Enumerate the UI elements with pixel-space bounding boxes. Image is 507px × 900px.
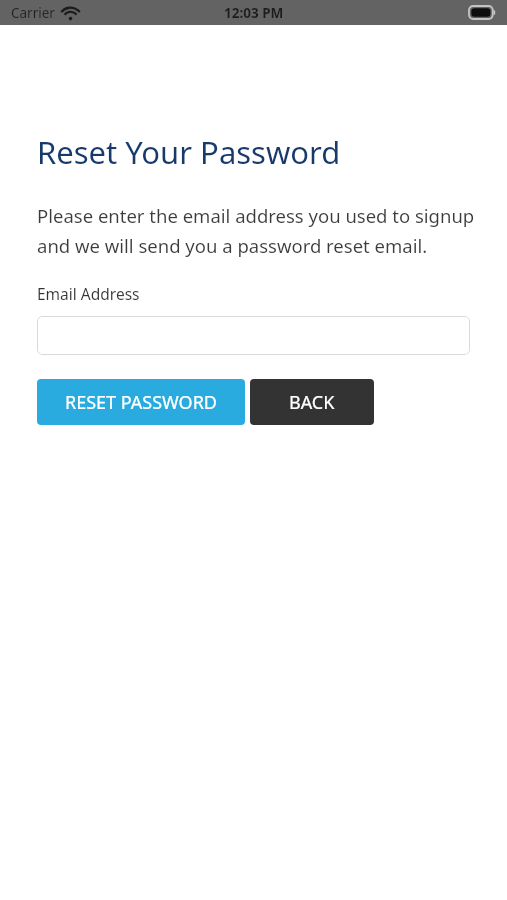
staticText: Please enter the email address you used … bbox=[37, 203, 479, 258]
staticText: RESET PASSWORD bbox=[65, 390, 217, 415]
staticText: Email Address bbox=[37, 283, 140, 304]
button[interactable]: RESET PASSWORD bbox=[37, 379, 245, 425]
other: Battery bbox=[469, 6, 496, 19]
button[interactable]: BACK bbox=[250, 379, 374, 425]
staticText: BACK bbox=[289, 390, 335, 415]
staticText: Reset Your Password bbox=[37, 131, 341, 173]
staticText: Carrier bbox=[11, 4, 55, 22]
button[interactable]: Email Address text field bbox=[37, 316, 470, 355]
other: Wi-Fi signal bbox=[62, 7, 79, 20]
staticText: 12:03 PM bbox=[224, 4, 284, 22]
